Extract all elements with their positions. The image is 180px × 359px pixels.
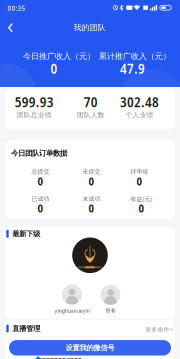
staticText: 未成功 <box>82 195 100 202</box>
staticText: 0 <box>136 174 142 189</box>
staticText: 团队人数 <box>77 111 105 119</box>
staticText: 已成功 <box>31 195 49 202</box>
staticText: 00:35 <box>7 4 25 13</box>
staticText: 0 <box>88 201 94 216</box>
staticText: 直播管理 <box>12 324 40 333</box>
button[interactable]: 所有 <box>100 285 120 314</box>
staticText: 个人业绩 <box>126 111 154 119</box>
staticText: 47.9 <box>120 59 145 78</box>
staticText: 599.93 <box>15 92 54 111</box>
staticText: 今日推广收入（元） <box>23 51 95 61</box>
staticText: 302.48 <box>120 92 159 111</box>
button[interactable]: yinghuaxueyin <box>54 284 89 314</box>
staticText: 0 <box>37 174 43 189</box>
staticText: 所有 <box>105 307 115 314</box>
staticText: 0 <box>88 174 94 189</box>
staticText: 总提交 <box>31 168 49 175</box>
staticText: 今日团队订单数据 <box>11 149 67 158</box>
staticText: 0 <box>138 201 144 216</box>
staticText: yinghuaxueyin <box>54 307 89 314</box>
staticText: 最新下级 <box>12 229 40 238</box>
staticText: 团队总业绩 <box>17 111 52 119</box>
button[interactable]: 下级成员 <box>72 237 108 273</box>
staticText: 更多操作> <box>145 325 172 333</box>
staticText: 0 <box>37 201 43 216</box>
staticText: 待审核 <box>130 168 148 175</box>
staticText: 未提交 <box>82 168 100 175</box>
staticText: 累计推广收入（元） <box>99 51 171 61</box>
button[interactable]: 更多操作> <box>145 325 172 333</box>
staticText: 收益(元) <box>130 195 152 203</box>
staticText: 0 <box>50 59 57 78</box>
staticText: 设置我的微信号 <box>65 343 114 352</box>
button[interactable]: 返回 <box>4 18 17 38</box>
staticText: 19990917821 <box>38 355 82 359</box>
staticText: 70 <box>84 92 98 111</box>
staticText: 我的团队 <box>73 23 105 33</box>
button[interactable]: 设置我的微信号 <box>9 340 171 356</box>
